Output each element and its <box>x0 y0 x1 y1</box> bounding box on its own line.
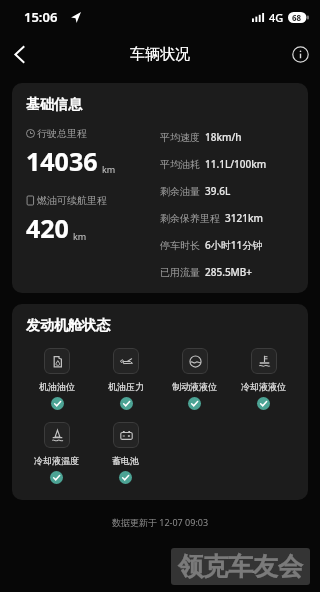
staticText: 蓄电池 <box>112 455 139 466</box>
staticText: 冷却液温度 <box>34 455 79 466</box>
staticText: 数据更新于 12-07 09:03 <box>0 516 320 528</box>
staticText: 机油压力 <box>108 381 144 392</box>
staticText: 平均速度 <box>160 131 200 144</box>
staticText: 39.6L <box>205 184 231 198</box>
staticText: 基础信息 <box>26 96 82 114</box>
staticText: 冷却液液位 <box>241 381 286 392</box>
staticText: 3121km <box>225 211 263 225</box>
staticText: 285.5MB+ <box>205 265 253 279</box>
button[interactable]: Info <box>280 34 320 74</box>
staticText: 已用流量 <box>160 266 200 279</box>
staticText: 机油油位 <box>39 381 75 392</box>
staticText: 剩余保养里程 <box>160 212 220 225</box>
staticText: 剩余油量 <box>160 185 200 198</box>
staticText: 车辆状况 <box>130 45 190 64</box>
staticText: 4G <box>269 10 284 25</box>
staticText: 燃油可续航里程 <box>37 194 107 207</box>
staticText: 6小时11分钟 <box>205 238 263 252</box>
button[interactable]: 冷却液温度 <box>34 422 79 484</box>
staticText: 68 <box>292 12 302 23</box>
staticText: 制动液液位 <box>172 381 217 392</box>
staticText: 行驶总里程 <box>37 127 87 140</box>
button[interactable]: 机油压力 <box>108 348 144 410</box>
staticText: 平均油耗 <box>160 158 200 171</box>
button[interactable]: 蓄电池 <box>112 422 139 484</box>
button[interactable]: 制动液液位 <box>172 348 217 410</box>
button[interactable]: 冷却液液位 <box>241 348 286 410</box>
staticText: 15:06 <box>24 8 58 26</box>
button[interactable]: Back <box>0 34 40 74</box>
staticText: 停车时长 <box>160 239 200 252</box>
staticText: 14036 <box>26 144 98 178</box>
staticText: km <box>73 230 87 242</box>
staticText: km <box>102 163 116 175</box>
staticText: 18km/h <box>205 130 242 144</box>
button[interactable]: 机油油位 <box>39 348 75 410</box>
staticText: 发动机舱状态 <box>26 317 110 335</box>
staticText: 领克车友会 <box>178 551 303 582</box>
staticText: 420 <box>26 211 69 245</box>
staticText: 11.1L/100km <box>205 157 267 171</box>
